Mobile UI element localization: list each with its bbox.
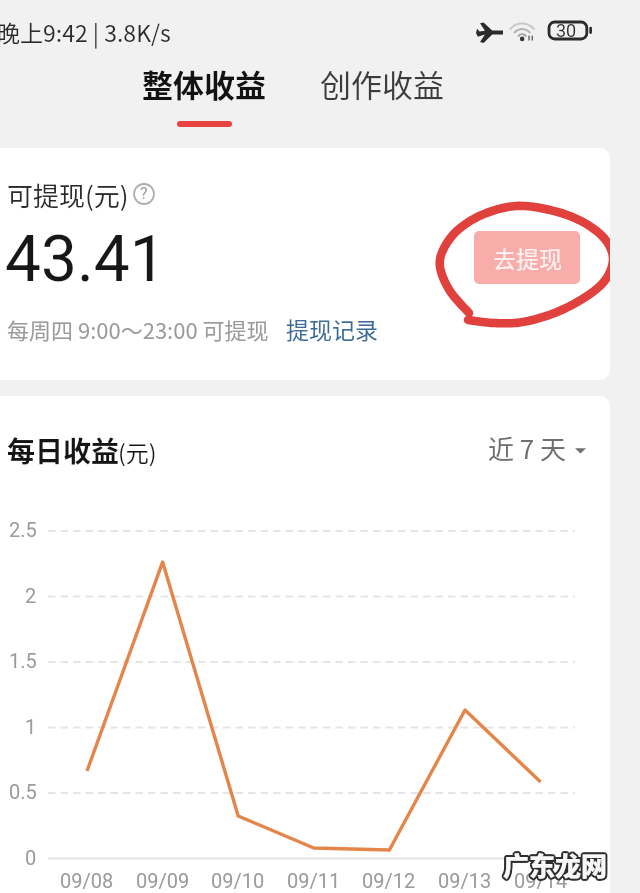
staticText: 43.41 [5,222,166,297]
staticText: 广东龙网 [502,848,607,886]
button[interactable]: 创作收益 [304,52,460,142]
staticText: 09/08 [60,869,114,892]
staticText: 创作收益 [320,61,444,106]
staticText: 广东龙网 [504,848,609,886]
button[interactable]: 说明 [133,183,155,205]
staticText: (元) [118,435,157,468]
staticText: 1 [25,715,37,738]
staticText: 广东龙网 [502,846,607,884]
staticText: 整体收益 [142,61,266,106]
staticText: 广东龙网 [503,847,608,885]
staticText: 广东龙网 [504,845,609,883]
staticText: 广东龙网 [503,848,608,886]
staticText: 广东龙网 [501,846,606,884]
staticText: 2 [25,584,37,607]
other: WiFi [510,20,537,47]
staticText: 晚上9:42 | 3.8K/s [0,15,171,48]
button[interactable]: 提现记录 [280,308,384,349]
staticText: 广东龙网 [503,845,608,883]
button[interactable]: 整体收益 [126,52,282,142]
staticText: 09/14 [514,869,568,892]
staticText: 2.5 [9,518,37,541]
staticText: 09/11 [287,869,341,892]
staticText: 广东龙网 [505,845,610,883]
staticText: 30 [556,20,577,39]
staticText: 09/13 [438,869,492,892]
staticText: 09/12 [362,869,416,892]
staticText: 广东龙网 [503,846,608,884]
staticText: 广东龙网 [504,847,609,885]
button[interactable]: 近 7 天 [488,429,586,467]
staticText: 广东龙网 [501,845,606,883]
staticText: 可提现(元) [7,176,129,214]
staticText: 09/09 [136,869,190,892]
staticText: 每日收益 [7,430,120,471]
staticText: 广东龙网 [501,847,606,885]
staticText: 09/10 [211,869,265,892]
staticText: 广东龙网 [502,847,607,885]
staticText: 广东龙网 [502,845,607,883]
other: 飞行模式 [476,22,503,43]
staticText: ? [140,184,148,203]
staticText: 0.5 [9,780,37,803]
staticText: 1.5 [9,649,37,672]
staticText: 每周四 9:00～23:00 可提现 [7,313,269,345]
staticText: 广东龙网 [504,846,609,884]
staticText: 广东龙网 [505,846,610,884]
button[interactable]: 去提现 [474,231,580,284]
staticText: 广东龙网 [505,847,610,885]
staticText: 近 7 天 [488,429,567,467]
staticText: 广东龙网 [502,844,607,882]
staticText: 0 [25,846,37,869]
staticText: 提现记录 [286,312,378,345]
staticText: 去提现 [493,241,562,274]
staticText: 广东龙网 [503,844,608,882]
staticText: 广东龙网 [504,844,609,882]
